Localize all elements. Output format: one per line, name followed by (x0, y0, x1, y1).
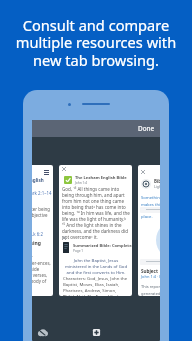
staticText: Conclusion: The Son of God became the (63, 293, 129, 296)
staticText: Done (138, 124, 155, 133)
staticText: Luke 1:1 Mark 2:1–14 Ps. Ex. 38:1 (32, 190, 53, 202)
staticText: Light (154, 184, 160, 189)
staticText: As to a matter being true in an objectiv… (32, 206, 53, 224)
button[interactable]: Lexham English Bible Expl… (32, 165, 53, 296)
staticText: John 1:4 · Light (141, 274, 160, 279)
staticText: John 1:4 (75, 181, 88, 185)
staticText: ple copy refer-ences, or which inside in… (32, 260, 53, 290)
button[interactable]: New tab (92, 328, 101, 337)
staticText: John the Baptist, Jesus ministered in th… (64, 257, 128, 275)
staticText: Bible Sense Lexicon (154, 178, 160, 184)
staticText: Ps 41:3–18 Lk 6:2 (32, 231, 43, 237)
staticText: Consult and compare multiple resources w… (4, 15, 188, 70)
button[interactable]: The Lexham English Bible (59, 165, 132, 296)
staticText: Tab browsing (32, 240, 41, 247)
staticText: Use multi- (32, 253, 33, 260)
button[interactable]: Bible Sense Lexicon (138, 165, 160, 296)
staticText: Subject (141, 268, 158, 274)
staticText: Lexham English Bible Expl… (32, 177, 53, 183)
staticText: This report was generated from the Light… (141, 284, 160, 296)
staticText: Characters: God, Jesus, John the Baptist… (63, 275, 129, 296)
staticText: God, ¹³ All things came into being throu… (62, 186, 130, 240)
button[interactable]: Done (138, 124, 155, 133)
staticText: The Lexham English Bible (75, 175, 127, 181)
staticText: Something that makes things visible illu… (141, 195, 160, 219)
staticText: Summarized Bible: Complete… (73, 243, 132, 249)
staticText: Page 1 (73, 249, 84, 253)
button[interactable]: Sync (36, 326, 49, 339)
